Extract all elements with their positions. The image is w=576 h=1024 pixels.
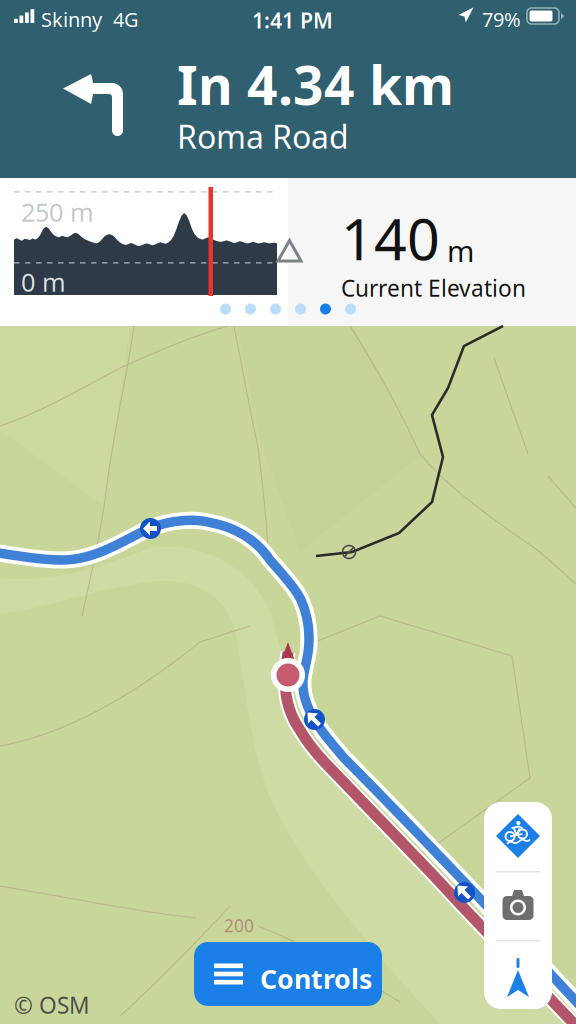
staticText: 140 <box>341 200 440 276</box>
staticText: 1:41 PM <box>252 6 333 34</box>
staticText: 200 <box>224 914 254 937</box>
staticText: 250 m <box>21 195 94 229</box>
button[interactable]: Route type <box>484 802 552 871</box>
staticText: Skinny <box>41 6 102 33</box>
staticText: m <box>447 231 474 270</box>
staticText: Current Elevation <box>341 273 526 303</box>
staticText: 0 m <box>21 265 66 299</box>
staticText: © OSM <box>14 990 90 1020</box>
button[interactable]: Controls <box>194 942 382 1006</box>
staticText: 4G <box>113 6 139 33</box>
staticText: 79% <box>482 6 521 33</box>
staticText: In 4.34 km <box>177 49 454 120</box>
staticText: Roma Road <box>177 115 349 157</box>
button[interactable]: Recenter map <box>484 940 552 1009</box>
staticText: Controls <box>260 961 372 996</box>
button[interactable]: Camera <box>484 871 552 940</box>
